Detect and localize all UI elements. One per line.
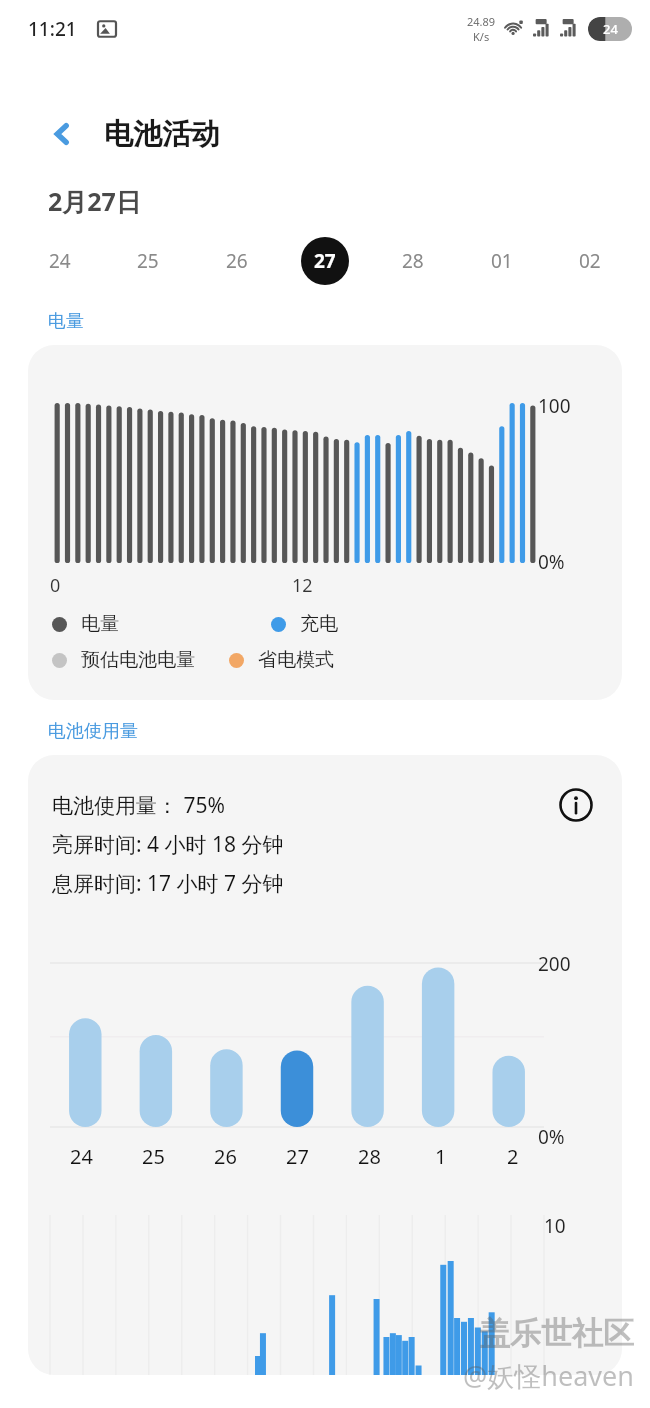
button[interactable]: 100 — [28, 345, 622, 700]
staticText: 1 — [435, 1143, 447, 1170]
staticText: 10 — [544, 1213, 566, 1239]
button[interactable]: 24 — [34, 235, 86, 287]
button[interactable]: 预估电池电量 — [52, 648, 195, 672]
staticText: 充电 — [300, 612, 338, 636]
button[interactable]: 电量 — [52, 612, 119, 636]
staticText: K/s — [473, 29, 490, 44]
staticText: 26 — [226, 248, 248, 274]
staticText: 电池使用量： 75% — [52, 791, 225, 820]
staticText: 息屏时间: 17 小时 7 分钟 — [52, 869, 284, 898]
staticText: 28 — [358, 1143, 381, 1170]
staticText: 24 — [70, 1143, 93, 1170]
button[interactable]: Back — [40, 112, 84, 156]
staticText: 电池活动 — [104, 116, 220, 153]
staticText: 24.89 — [467, 14, 496, 29]
staticText: 26 — [214, 1143, 237, 1170]
button[interactable]: 26 — [211, 235, 263, 287]
staticText: 0% — [538, 549, 565, 575]
button[interactable]: 充电 — [271, 612, 338, 636]
staticText: 28 — [402, 248, 424, 274]
button[interactable]: 25 — [122, 235, 174, 287]
staticText: 24 — [603, 20, 618, 38]
button[interactable]: Info — [554, 783, 598, 827]
staticText: 0 — [50, 573, 61, 598]
staticText: 25 — [142, 1143, 165, 1170]
staticText: 0% — [538, 1124, 565, 1150]
staticText: 27 — [286, 1143, 309, 1170]
button[interactable]: 省电模式 — [229, 648, 334, 672]
staticText: 100 — [538, 393, 571, 419]
staticText: 电池使用量 — [48, 720, 138, 743]
staticText: 12 — [292, 573, 313, 598]
staticText: 01 — [491, 248, 513, 274]
button[interactable]: 27 — [299, 235, 351, 287]
button[interactable]: 28 — [387, 235, 439, 287]
staticText: 电量 — [48, 310, 84, 333]
staticText: 24 — [49, 248, 71, 274]
staticText: @妖怪heaven — [463, 1357, 634, 1394]
button[interactable]: 01 — [476, 235, 528, 287]
staticText: 亮屏时间: 4 小时 18 分钟 — [52, 830, 284, 859]
staticText: 预估电池电量 — [81, 648, 195, 672]
staticText: 2月27日 — [48, 184, 141, 218]
staticText: 电量 — [81, 612, 119, 636]
staticText: 25 — [137, 248, 159, 274]
staticText: 11:21 — [28, 16, 77, 42]
button[interactable]: 电池使用量： 75% — [28, 755, 622, 1375]
button[interactable]: 02 — [564, 235, 616, 287]
staticText: 200 — [538, 951, 571, 977]
staticText: 省电模式 — [258, 648, 334, 672]
staticText: 02 — [579, 248, 601, 274]
staticText: 2 — [507, 1143, 519, 1170]
staticText: 27 — [314, 248, 336, 274]
staticText: 盖乐世社区 — [479, 1314, 634, 1353]
